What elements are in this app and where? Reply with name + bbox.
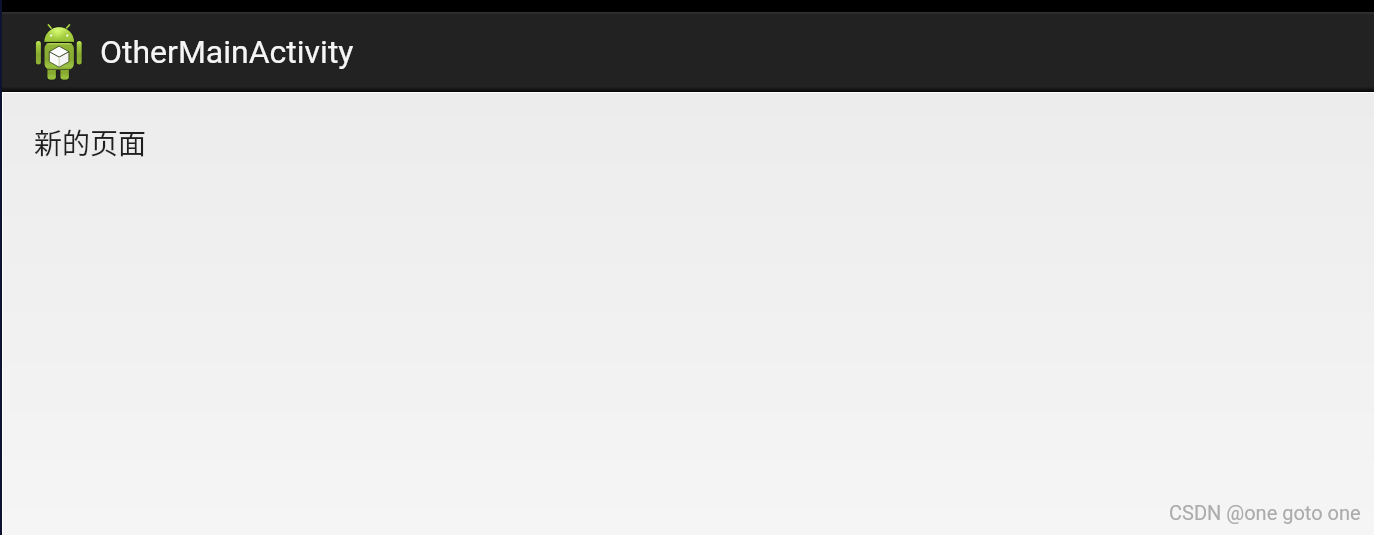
button[interactable]: OtherMainActivity app icon — [2, 12, 372, 92]
staticText: OtherMainActivity — [100, 33, 354, 71]
staticText: 新的页面 — [34, 122, 147, 163]
other: OtherMainActivity app icon — [35, 24, 83, 80]
staticText: CSDN @one goto one — [1169, 501, 1361, 524]
